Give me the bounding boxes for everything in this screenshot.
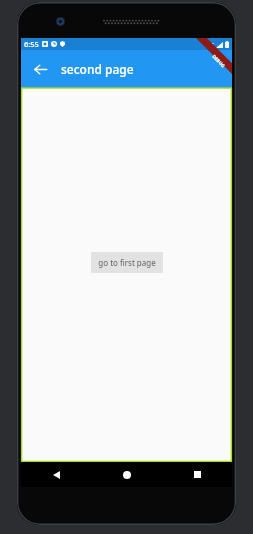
staticText: go to first page — [98, 257, 156, 268]
button[interactable]: go to first page — [91, 252, 163, 273]
staticText: second page — [61, 61, 134, 77]
button[interactable]: Home — [92, 462, 162, 487]
staticText: 6:55 — [24, 39, 39, 49]
button[interactable]: Back — [21, 462, 92, 487]
staticText: DEBUG — [211, 53, 227, 69]
button[interactable]: Back — [25, 54, 55, 84]
button[interactable]: Recent apps — [162, 462, 232, 487]
